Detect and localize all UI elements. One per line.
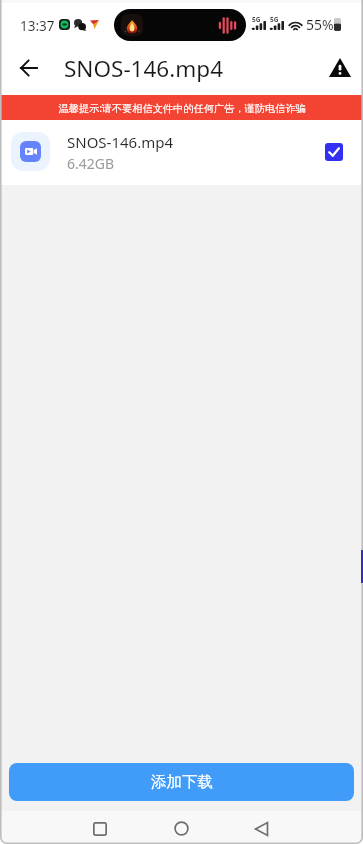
- staticText: 温馨提示:请不要相信文件中的任何广告，谨防电信诈骗: [58, 101, 306, 115]
- staticText: 55%: [306, 15, 334, 34]
- button[interactable]: Warning: [322, 49, 358, 85]
- staticText: SNOS-146.mp4: [67, 132, 174, 152]
- button[interactable]: Back: [8, 48, 48, 88]
- staticText: SNOS-146.mp4: [64, 53, 224, 84]
- button[interactable]: Select file: [319, 137, 349, 167]
- button[interactable]: Back: [243, 812, 279, 844]
- staticText: 6.42GB: [67, 154, 115, 173]
- button[interactable]: Recents: [82, 812, 118, 844]
- staticText: 添加下载: [151, 772, 213, 792]
- staticText: 5G: [270, 15, 279, 24]
- button[interactable]: Home: [163, 812, 199, 844]
- staticText: 5G: [252, 15, 261, 24]
- button[interactable]: SNOS-146.mp4: [0, 120, 363, 185]
- staticText: 13:37: [20, 17, 55, 35]
- button[interactable]: 添加下载: [9, 763, 354, 801]
